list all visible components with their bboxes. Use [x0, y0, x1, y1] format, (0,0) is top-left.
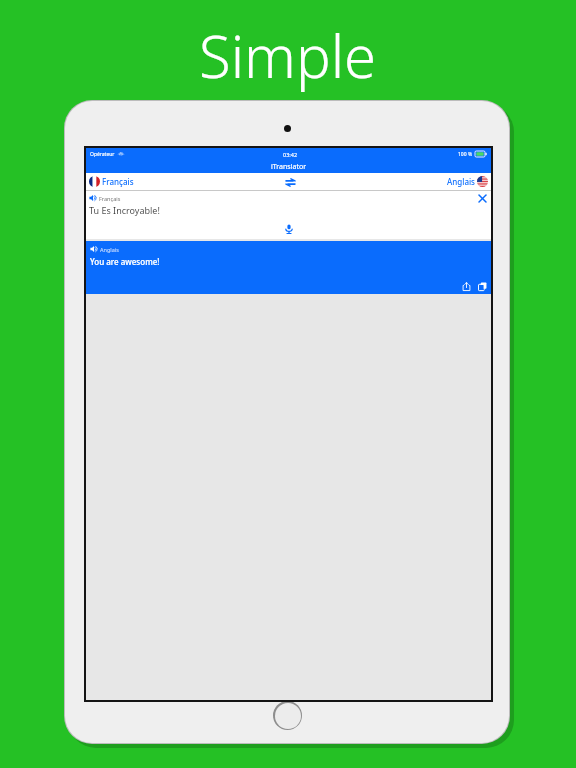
button[interactable]: Français	[89, 194, 121, 202]
staticText: Opérateur	[90, 151, 115, 158]
staticText: Anglais	[100, 246, 119, 253]
button[interactable]: Swap languages	[283, 175, 297, 189]
staticText: Tu Es Incroyable!	[89, 204, 160, 216]
button[interactable]: Copy	[476, 280, 488, 292]
staticText: Français	[102, 176, 134, 187]
staticText: iTranslator	[271, 162, 307, 172]
button[interactable]: Anglais	[446, 176, 489, 187]
button[interactable]: Share	[460, 280, 472, 292]
button[interactable]: Français	[88, 176, 135, 187]
button[interactable]: Microphone	[282, 222, 296, 236]
button[interactable]: Home	[273, 701, 302, 730]
staticText: Anglais	[447, 176, 475, 187]
staticText: You are awesome!	[90, 256, 160, 267]
staticText: Français	[99, 195, 121, 202]
staticText: Simple	[199, 16, 377, 95]
staticText: 100 %	[458, 151, 473, 158]
button[interactable]: Clear	[477, 193, 487, 203]
staticText: 03:42	[283, 151, 298, 158]
